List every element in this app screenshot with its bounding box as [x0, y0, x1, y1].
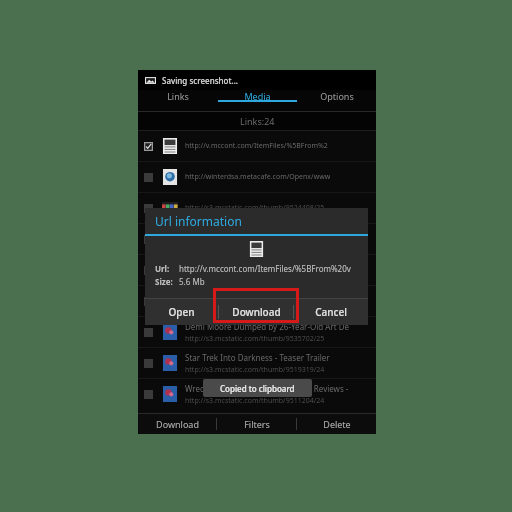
staticText: http://s3.mcstatic.com/thumb/9524011/24: [185, 265, 325, 275]
staticText: http://winterdsa.metacafe.com/Openx/www: [185, 172, 331, 182]
button[interactable]: Media: [218, 90, 297, 102]
staticText: Cancel: [315, 305, 347, 319]
staticText: Download: [232, 305, 281, 319]
staticText: http://s3.mcstatic.com/thumb/9517781/24: [185, 234, 325, 244]
staticText: Wreck-It Ralph & This Is 40: Movie Revie…: [185, 383, 349, 394]
staticText: http://v.mccont.com/ItemFiles/%5BFrom%2: [185, 141, 328, 151]
button[interactable]: Links: [138, 90, 218, 102]
button[interactable]: http://s3.mcstatic.com/thumb/9524011/24: [138, 255, 376, 285]
staticText: Download: [156, 418, 199, 430]
staticText: http://s3.mcstatic.com/thumb/9535702/25: [185, 334, 325, 344]
button[interactable]: Download: [138, 418, 216, 430]
staticText: Url information: [155, 213, 242, 229]
staticText: Star Trek Into Darkness - Teaser Trailer: [185, 352, 330, 363]
button[interactable]: http://s3.mcstatic.com/thumb/9524408/25: [138, 193, 376, 223]
button[interactable]: Demi Moore Dumped by 26-Year-Old Art De: [138, 317, 376, 347]
button[interactable]: Cancel: [294, 305, 368, 319]
staticText: Links:24: [240, 115, 275, 127]
staticText: Links: [167, 90, 189, 102]
button[interactable]: Download: [219, 305, 293, 319]
staticText: http://s3.mcstatic.com/thumb/9511204/24: [185, 396, 325, 406]
staticText: Saving screenshot...: [162, 75, 239, 86]
button[interactable]: http://v.mccont.com/ItemFiles/%5BFrom%2: [138, 131, 376, 161]
staticText: Delete: [323, 418, 351, 430]
staticText: 5.6 Mb: [179, 276, 205, 287]
staticText: Url:: [155, 263, 179, 274]
staticText: Size:: [155, 276, 179, 287]
button[interactable]: http://s3.mcstatic.com/thumb/9520917/24: [138, 286, 376, 316]
staticText: http://s3.mcstatic.com/thumb/9520917/24: [185, 296, 325, 306]
staticText: http://s3.mcstatic.com/thumb/9524408/25: [185, 203, 325, 213]
button[interactable]: Wreck-It Ralph & This Is 40: Movie Revie…: [138, 379, 376, 409]
staticText: Copied to clipboard: [220, 383, 295, 394]
staticText: Options: [320, 90, 354, 102]
button[interactable]: http://s3.mcstatic.com/thumb/9517781/24: [138, 224, 376, 254]
button[interactable]: Delete: [297, 418, 376, 430]
staticText: Open: [168, 305, 195, 319]
staticText: http://s3.mcstatic.com/thumb/9519319/24: [185, 365, 325, 375]
staticText: Media: [244, 90, 271, 102]
button[interactable]: Options: [297, 90, 376, 102]
button[interactable]: http://winterdsa.metacafe.com/Openx/www: [138, 162, 376, 192]
staticText: Demi Moore Dumped by 26-Year-Old Art De: [185, 321, 350, 332]
staticText: http://v.mccont.com/ItemFiles/%5BFrom%20…: [179, 263, 351, 274]
staticText: Filters: [244, 418, 270, 430]
button[interactable]: Star Trek Into Darkness - Teaser Trailer: [138, 348, 376, 378]
button[interactable]: Open: [145, 305, 218, 319]
button[interactable]: Filters: [217, 418, 296, 430]
